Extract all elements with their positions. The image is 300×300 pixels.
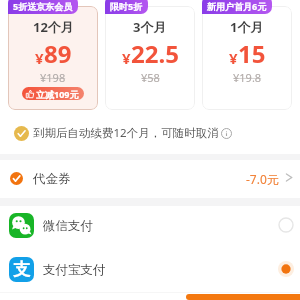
staticText: 22.5 bbox=[131, 37, 179, 70]
staticText: ¥198 bbox=[40, 70, 66, 85]
staticText: 1个月 bbox=[230, 18, 264, 36]
button[interactable]: 微信支付 bbox=[0, 206, 300, 250]
button[interactable]: 3个月 bbox=[105, 6, 195, 110]
button[interactable]: 12个月 bbox=[8, 6, 98, 110]
staticText: 支 bbox=[13, 259, 30, 280]
staticText: 微信支付 bbox=[43, 218, 93, 234]
staticText: 立减109元 bbox=[36, 88, 79, 100]
staticText: 新用户首月6元 bbox=[207, 0, 267, 12]
staticText: 89 bbox=[44, 37, 72, 70]
staticText: 代金券 bbox=[33, 171, 71, 187]
button[interactable]: 1个月 bbox=[202, 6, 292, 110]
staticText: 支付宝支付 bbox=[43, 262, 106, 278]
button[interactable]: 代金券 bbox=[0, 160, 300, 198]
staticText: ¥58 bbox=[141, 70, 160, 85]
staticText: ¥ bbox=[35, 48, 44, 68]
staticText: 5折送京东会员 bbox=[13, 0, 73, 12]
staticText: ¥ bbox=[229, 48, 238, 68]
button[interactable]: 支 bbox=[0, 250, 300, 294]
staticText: 到期后自动续费12个月，可随时取消 bbox=[33, 125, 219, 141]
staticText: 限时5折 bbox=[110, 0, 143, 12]
staticText: ¥19.8 bbox=[233, 70, 262, 85]
staticText: -7.0元 bbox=[246, 171, 279, 187]
staticText: ¥ bbox=[122, 48, 131, 68]
staticText: 15 bbox=[238, 37, 266, 70]
button[interactable]: 到期后自动续费12个月，可随时取消 bbox=[0, 114, 300, 154]
button[interactable]: 立即开通 bbox=[186, 294, 300, 300]
staticText: 12个月 bbox=[33, 18, 74, 36]
staticText: 3个月 bbox=[133, 18, 167, 36]
